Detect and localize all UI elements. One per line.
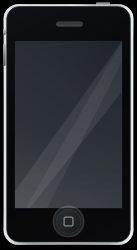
button[interactable]: iPhone device illustration: [0, 0, 137, 250]
